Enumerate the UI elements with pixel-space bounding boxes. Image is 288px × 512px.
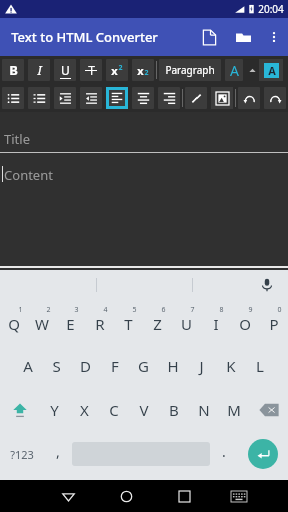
button[interactable]: Indent xyxy=(54,87,76,109)
button[interactable]: G xyxy=(129,344,158,388)
staticText: U xyxy=(61,62,70,78)
staticText: Text to HTML Converter xyxy=(11,28,158,46)
button[interactable]: 3 xyxy=(56,300,85,344)
staticText: 7 xyxy=(190,305,195,315)
staticText: E xyxy=(66,314,75,334)
staticText: A xyxy=(230,61,239,80)
staticText: J xyxy=(199,356,204,376)
button[interactable]: ?123 xyxy=(0,432,44,476)
staticText: 8 xyxy=(219,305,224,315)
button[interactable]: Insert link xyxy=(185,87,207,109)
staticText: 2 xyxy=(46,305,51,315)
button[interactable]: 6 xyxy=(143,300,172,344)
button[interactable]: 7 xyxy=(172,300,201,344)
button[interactable]: x xyxy=(132,59,154,81)
button[interactable]: Outdent xyxy=(80,87,102,109)
button[interactable]: Content xyxy=(0,163,288,266)
button[interactable]: 9 xyxy=(230,300,259,344)
button[interactable]: Back xyxy=(39,480,97,512)
staticText: O xyxy=(239,314,251,334)
button[interactable]: Undo xyxy=(238,87,260,109)
staticText: G xyxy=(138,356,149,376)
button[interactable]: Text color xyxy=(245,56,259,84)
staticText: Y xyxy=(50,400,59,420)
button[interactable]: Align left xyxy=(106,87,128,109)
button[interactable]: V xyxy=(129,388,159,432)
button[interactable]: S xyxy=(42,344,71,388)
button[interactable]: X xyxy=(69,388,99,432)
button[interactable]: Recent apps xyxy=(155,480,213,512)
button[interactable]: Paragraph xyxy=(159,59,221,81)
button[interactable]: More options xyxy=(260,23,288,51)
button[interactable]: x xyxy=(106,59,128,81)
button[interactable]: Hide keyboard xyxy=(213,480,265,512)
button[interactable]: 5 xyxy=(114,300,143,344)
button[interactable]: F xyxy=(100,344,129,388)
staticText: D xyxy=(80,356,91,376)
staticText: , xyxy=(56,442,60,461)
button[interactable]: C xyxy=(99,388,129,432)
staticText: T xyxy=(124,314,133,334)
button[interactable]: Shift xyxy=(0,388,39,432)
button[interactable]: Enter xyxy=(238,432,288,476)
button[interactable]: 8 xyxy=(201,300,230,344)
button[interactable]: Redo xyxy=(264,87,286,109)
button[interactable]: Align right xyxy=(158,87,180,109)
button[interactable]: 1 xyxy=(0,300,28,344)
button[interactable]: Numbered list xyxy=(28,87,50,109)
button[interactable]: Voice input xyxy=(256,274,278,296)
button[interactable]: , xyxy=(44,432,72,476)
staticText: I xyxy=(37,61,42,79)
button[interactable]: A xyxy=(13,344,42,388)
staticText: 1 xyxy=(18,305,23,315)
button[interactable]: 0 xyxy=(259,300,288,344)
button[interactable]: Home xyxy=(97,480,155,512)
staticText: F xyxy=(111,356,119,376)
button[interactable]: Y xyxy=(39,388,69,432)
staticText: K xyxy=(226,356,236,376)
staticText: S xyxy=(52,356,61,376)
button[interactable]: 2 xyxy=(28,300,56,344)
button[interactable]: L xyxy=(245,344,274,388)
staticText: 2 xyxy=(118,63,123,73)
staticText: L xyxy=(256,356,264,376)
staticText: Content xyxy=(4,166,53,184)
staticText: . xyxy=(222,442,226,461)
staticText: C xyxy=(109,400,119,420)
staticText: 4 xyxy=(103,305,108,315)
staticText: 2 xyxy=(144,68,149,78)
staticText: A xyxy=(23,356,33,376)
button[interactable]: T xyxy=(80,59,102,81)
button[interactable]: Highlight color xyxy=(259,59,283,81)
button[interactable]: U xyxy=(54,59,76,81)
button[interactable]: N xyxy=(189,388,219,432)
button[interactable]: . xyxy=(210,432,238,476)
staticText: 6 xyxy=(161,305,166,315)
button[interactable]: Open file xyxy=(226,20,260,54)
button[interactable]: Backspace xyxy=(249,388,288,432)
button[interactable]: Align center xyxy=(132,87,154,109)
button[interactable]: J xyxy=(187,344,216,388)
button[interactable]: D xyxy=(71,344,100,388)
button[interactable]: Insert image xyxy=(211,87,233,109)
button[interactable]: B xyxy=(2,59,24,81)
staticText: M xyxy=(227,400,241,420)
button[interactable]: H xyxy=(158,344,187,388)
button[interactable]: B xyxy=(159,388,189,432)
button[interactable]: Bullet list xyxy=(2,87,24,109)
staticText: V xyxy=(139,400,149,420)
button[interactable]: A xyxy=(225,59,243,81)
button[interactable]: Title xyxy=(4,126,288,152)
button[interactable]: New document xyxy=(192,20,226,54)
staticText: ?123 xyxy=(10,447,34,462)
button[interactable]: I xyxy=(28,59,50,81)
staticText: H xyxy=(167,356,179,376)
staticText: 0 xyxy=(277,305,282,315)
button[interactable]: K xyxy=(216,344,245,388)
staticText: I xyxy=(213,314,219,334)
button[interactable]: 4 xyxy=(85,300,114,344)
staticText: Q xyxy=(8,314,20,334)
staticText: X xyxy=(80,400,89,420)
button[interactable]: M xyxy=(219,388,249,432)
